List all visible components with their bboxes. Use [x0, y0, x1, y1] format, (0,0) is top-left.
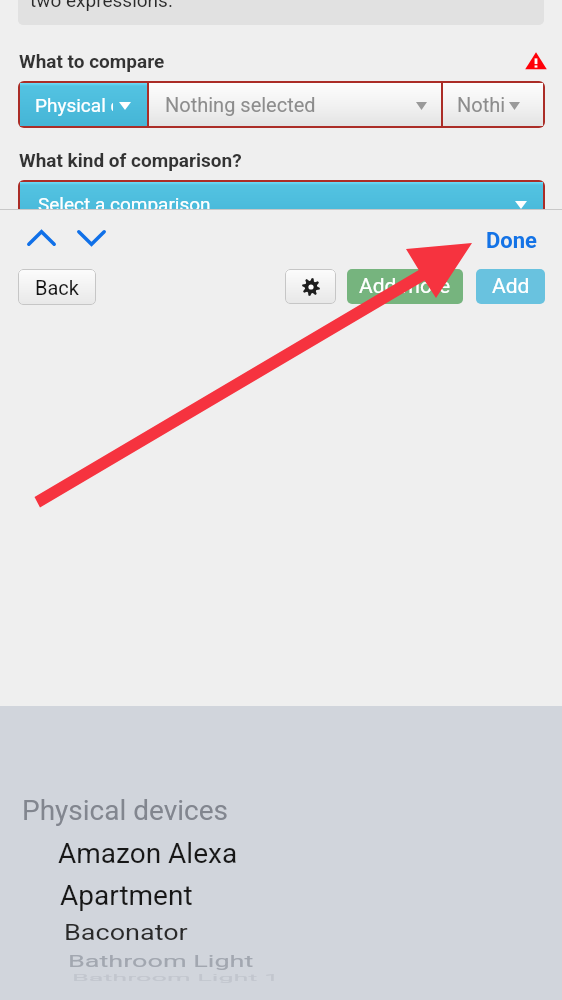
staticText: Apartment	[60, 880, 193, 912]
staticText: Bathroom Light 1	[72, 972, 280, 983]
staticText: Done	[486, 228, 537, 254]
staticText: Nothi	[457, 93, 506, 116]
button[interactable]: Add	[476, 269, 545, 304]
button[interactable]: Nothing selected	[149, 83, 441, 126]
button[interactable]: Previous field	[19, 222, 64, 254]
button[interactable]: Add more	[347, 269, 463, 304]
button[interactable]: Nothi	[443, 83, 543, 126]
button[interactable]: Settings	[285, 269, 336, 304]
staticText: Physical c	[35, 94, 113, 116]
staticText: Physical devices	[22, 794, 229, 827]
button[interactable]: Next field	[69, 222, 114, 254]
staticText: Select a comparison...	[38, 193, 226, 215]
button[interactable]: Back	[18, 269, 96, 305]
button[interactable]: Select a comparison...	[18, 180, 545, 227]
staticText: What kind of comparison?	[19, 149, 242, 171]
staticText: Back	[35, 276, 79, 299]
button[interactable]: Warning	[525, 50, 547, 72]
staticText: two expressions.	[30, 0, 173, 11]
button[interactable]: Physical c	[20, 83, 147, 126]
staticText: Nothing selected	[165, 93, 316, 116]
staticText: Baconator	[64, 920, 188, 946]
staticText: Add more	[359, 274, 451, 299]
staticText: What to compare	[19, 50, 165, 72]
staticText: Add	[492, 274, 530, 299]
staticText: Bathroom Light	[68, 952, 254, 971]
staticText: Amazon Alexa	[58, 837, 238, 870]
button[interactable]: Done	[474, 224, 548, 258]
